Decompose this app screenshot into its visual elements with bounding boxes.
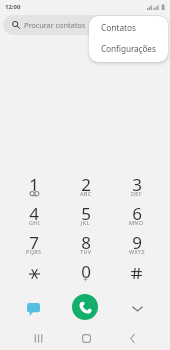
- button[interactable]: 0: [60, 256, 111, 285]
- button[interactable]: 6: [111, 198, 162, 227]
- button[interactable]: 2: [60, 169, 111, 198]
- staticText: TUV: [80, 248, 92, 255]
- staticText: DEF: [131, 190, 142, 197]
- button[interactable]: Configurações: [89, 39, 168, 62]
- staticText: 0: [81, 260, 91, 283]
- staticText: JKL: [81, 219, 90, 226]
- staticText: Configurações: [101, 43, 156, 54]
- button[interactable]: Hide keypad: [127, 298, 147, 318]
- button[interactable]: Contatos: [89, 16, 168, 39]
- button[interactable]: Message: [23, 299, 43, 319]
- button[interactable]: 5: [60, 198, 111, 227]
- staticText: ABC: [80, 190, 92, 197]
- button[interactable]: 3: [111, 169, 162, 198]
- staticText: Contatos: [101, 22, 137, 33]
- staticText: 4: [29, 202, 39, 225]
- staticText: 1: [29, 173, 39, 196]
- button[interactable]: 1: [8, 169, 60, 198]
- staticText: WXYZ: [129, 248, 145, 255]
- staticText: 8: [81, 231, 91, 254]
- button[interactable]: Home: [76, 328, 96, 348]
- staticText: Procurar contatos: [24, 20, 86, 30]
- staticText: 2: [81, 173, 91, 196]
- staticText: GHI: [29, 219, 40, 226]
- button[interactable]: [111, 256, 162, 285]
- button[interactable]: [8, 256, 60, 285]
- staticText: 7: [29, 231, 39, 254]
- button[interactable]: 4: [8, 198, 60, 227]
- button[interactable]: Call: [72, 294, 98, 320]
- staticText: 12:00: [5, 3, 21, 11]
- staticText: MNO: [129, 219, 144, 226]
- button[interactable]: 9: [111, 227, 162, 256]
- staticText: 9: [132, 231, 142, 254]
- button[interactable]: Procurar contatos: [3, 15, 167, 35]
- button[interactable]: 7: [8, 227, 60, 256]
- button[interactable]: 8: [60, 227, 111, 256]
- staticText: PQRS: [26, 248, 42, 255]
- staticText: 3: [132, 173, 142, 196]
- button[interactable]: Back: [122, 328, 142, 348]
- button[interactable]: Recents: [28, 328, 48, 348]
- staticText: 6: [132, 202, 142, 225]
- staticText: 5: [81, 202, 91, 225]
